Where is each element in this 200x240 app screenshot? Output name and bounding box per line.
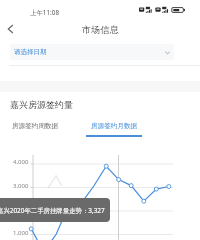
staticText: 1,000 xyxy=(13,229,29,237)
button[interactable]: Back xyxy=(0,18,22,40)
staticText: 嘉兴2020年二手房挂牌量走势：3,327 xyxy=(0,206,105,215)
staticText: 2,000 xyxy=(13,205,29,213)
staticText: 3,000 xyxy=(13,182,29,190)
staticText: 市场信息 xyxy=(82,24,119,36)
staticText: 嘉兴房源签约量 xyxy=(10,99,73,110)
button[interactable]: 房源签约月数据 xyxy=(86,117,143,140)
staticText: 请选择日期 xyxy=(14,48,47,56)
button[interactable]: 请选择日期 xyxy=(10,44,174,60)
staticText: 上午11:08 xyxy=(30,8,60,17)
button[interactable]: 房源签约周数据 xyxy=(7,117,63,140)
staticText: 房源签约周数据 xyxy=(12,122,59,130)
staticText: 4,000 xyxy=(13,158,29,166)
staticText: 房源签约月数据 xyxy=(91,122,138,130)
